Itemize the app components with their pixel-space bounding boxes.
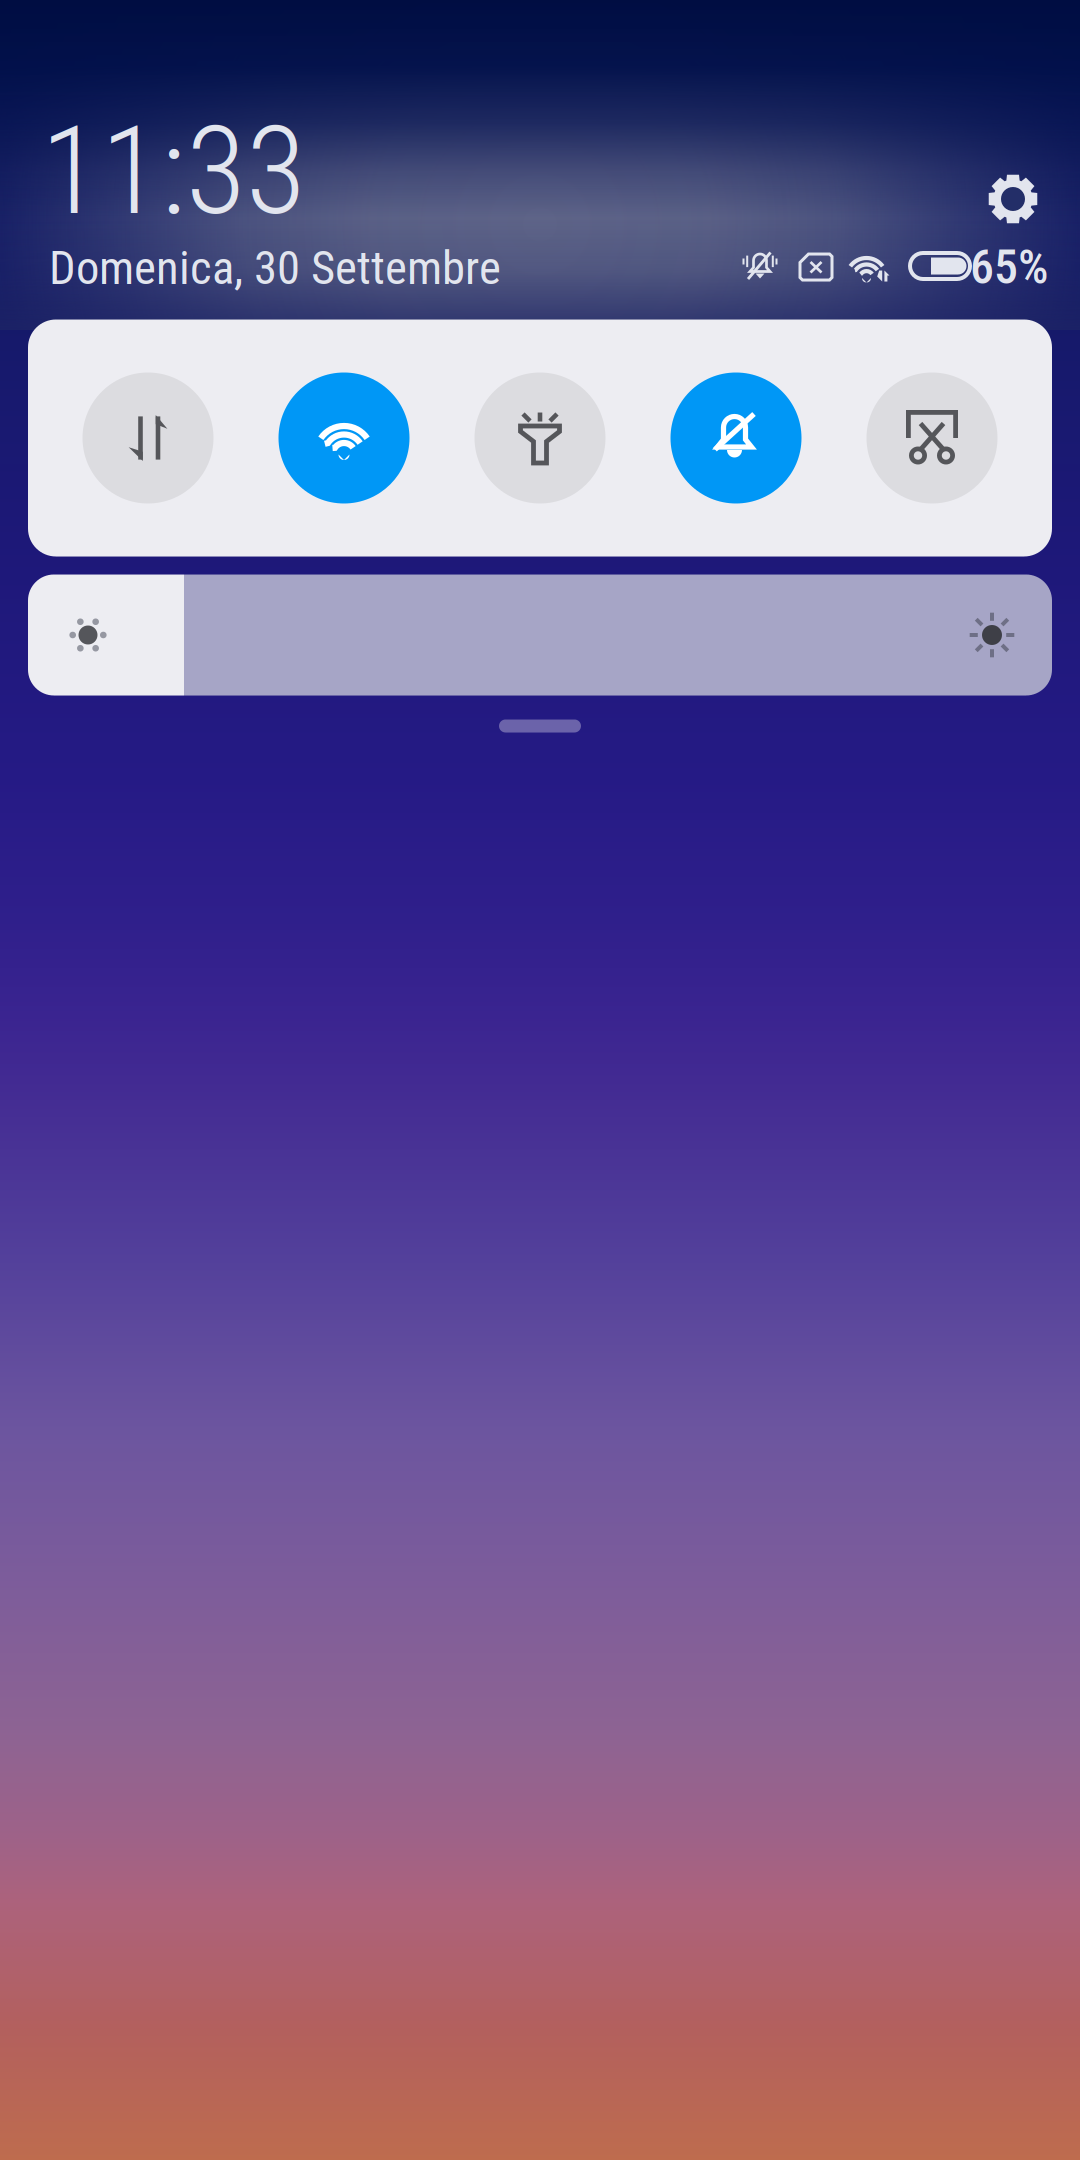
button[interactable]: Settings xyxy=(988,174,1038,224)
button[interactable]: Mobile data xyxy=(50,319,246,556)
staticText: Domenica, 30 Settembre xyxy=(49,241,501,295)
button[interactable]: Brightness xyxy=(28,574,1052,695)
button[interactable]: Silent mode xyxy=(638,319,834,556)
button[interactable]: Wi-Fi xyxy=(246,319,442,556)
staticText: 65% xyxy=(970,239,1049,295)
button[interactable]: Flashlight xyxy=(442,319,638,556)
staticText: 11:33 xyxy=(41,99,306,243)
button[interactable]: Screenshot xyxy=(834,319,1030,556)
